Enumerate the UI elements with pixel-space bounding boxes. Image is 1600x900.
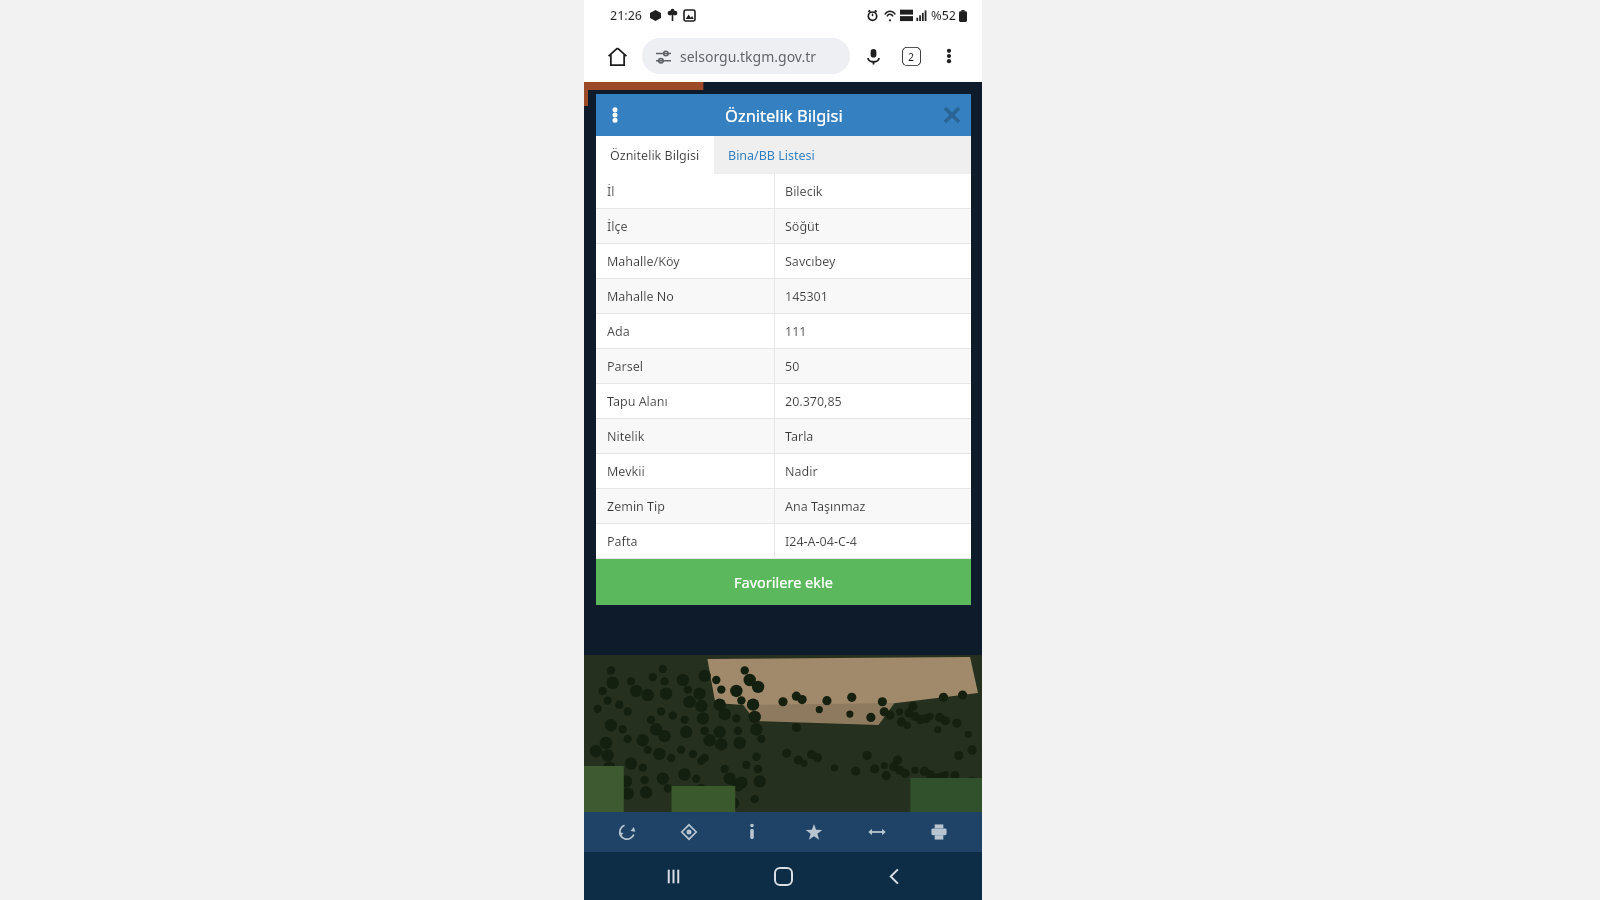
button[interactable]: İlçe [596, 209, 971, 244]
staticText: Tarla [785, 428, 814, 445]
button[interactable]: Favorilere ekle [596, 559, 971, 605]
button[interactable]: Recent apps [651, 854, 695, 898]
staticText: Bilecik [785, 183, 823, 200]
staticText: selsorgu.tkgm.gov.tr [680, 47, 816, 66]
staticText: 111 [785, 323, 807, 340]
staticText: Mahalle No [607, 288, 674, 305]
button[interactable]: Parsel [596, 349, 971, 384]
staticText: 20.370,85 [785, 393, 842, 410]
staticText: I24-A-04-C-4 [785, 533, 857, 550]
button[interactable]: Mahalle No [596, 279, 971, 314]
staticText: 50 [785, 358, 800, 375]
button[interactable]: Öznitelik Bilgisi [596, 136, 714, 174]
staticText: Mevkii [607, 463, 645, 480]
button[interactable]: Information [732, 812, 772, 852]
staticText: Tapu Alanı [607, 393, 668, 410]
staticText: Ada [607, 323, 630, 340]
staticText: Pafta [607, 533, 638, 550]
button[interactable]: My location [669, 812, 709, 852]
staticText: 21:26 [610, 7, 643, 24]
button[interactable]: More options [932, 39, 966, 73]
staticText: Bina/BB Listesi [728, 147, 815, 164]
button[interactable]: selsorgu.tkgm.gov.tr [642, 38, 850, 74]
staticText: Nitelik [607, 428, 645, 445]
staticText: Parsel [607, 358, 644, 375]
staticText: Nadir [785, 463, 818, 480]
button[interactable]: Ada [596, 314, 971, 349]
button[interactable]: Pafta [596, 524, 971, 559]
button[interactable]: Home [600, 39, 634, 73]
button[interactable]: Mahalle/Köy [596, 244, 971, 279]
staticText: Favorilere ekle [734, 572, 833, 592]
button[interactable]: Tapu Alanı [596, 384, 971, 419]
staticText: İlçe [607, 218, 628, 235]
button[interactable]: Favourites [794, 812, 834, 852]
button[interactable]: Menu [596, 96, 634, 134]
button[interactable]: Print [919, 812, 959, 852]
staticText: Öznitelik Bilgisi [725, 104, 843, 126]
button[interactable]: Back [872, 854, 916, 898]
button[interactable]: Zemin Tip [596, 489, 971, 524]
button[interactable]: Close [933, 96, 971, 134]
button[interactable]: Refresh [607, 812, 647, 852]
staticText: İl [607, 183, 615, 200]
staticText: Mahalle/Köy [607, 253, 680, 270]
staticText: Ana Taşınmaz [785, 498, 866, 515]
staticText: 2 [908, 50, 915, 64]
button[interactable]: Tabs, 2 open [894, 39, 928, 73]
button[interactable]: Voice search [856, 39, 890, 73]
button[interactable]: Measure [857, 812, 897, 852]
button[interactable]: İl [596, 174, 971, 209]
button[interactable]: Bina/BB Listesi [714, 136, 829, 174]
button[interactable]: Home [761, 854, 805, 898]
staticText: Savcıbey [785, 253, 836, 270]
staticText: Söğüt [785, 218, 820, 235]
staticText: Zemin Tip [607, 498, 665, 515]
staticText: Öznitelik Bilgisi [610, 147, 700, 164]
staticText: %52 [931, 7, 956, 24]
staticText: 145301 [785, 288, 828, 305]
button[interactable]: Nitelik [596, 419, 971, 454]
button[interactable]: Mevkii [596, 454, 971, 489]
